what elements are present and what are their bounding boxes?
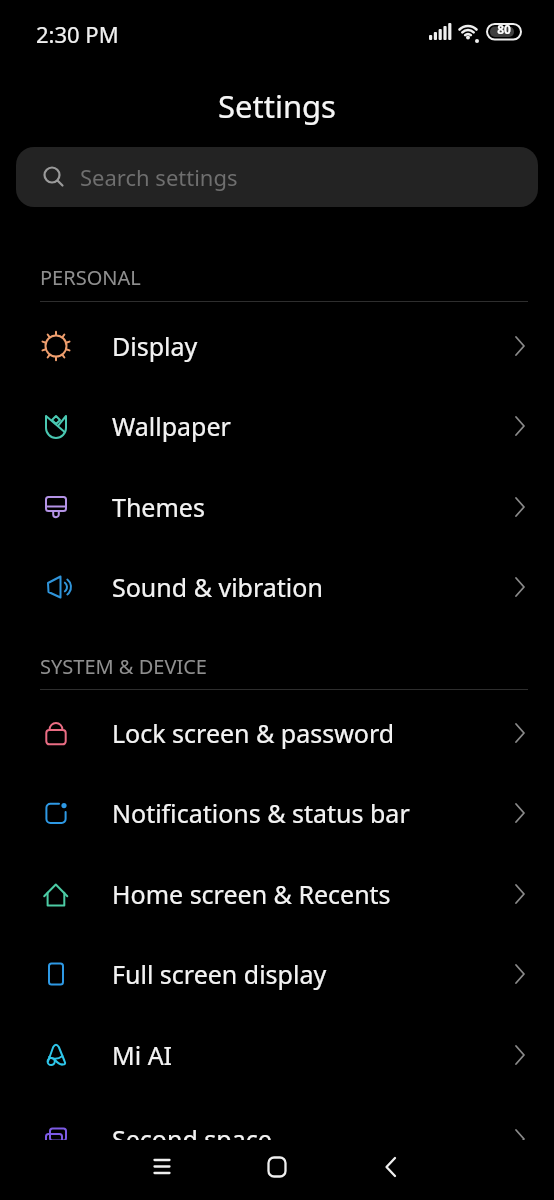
button[interactable] [347,1142,435,1192]
staticText: 80 [493,21,515,37]
staticText: Themes [112,490,205,524]
staticText: Settings [218,85,336,127]
staticText: Second space [112,1122,272,1156]
button[interactable]: Themes [0,467,554,547]
button[interactable]: Lock screen & password [0,693,554,773]
staticText: PERSONAL [40,264,141,291]
button[interactable]: Search settings [16,147,538,207]
staticText: Wallpaper [112,409,231,443]
button[interactable]: Notifications & status bar [0,773,554,853]
staticText: Sound & vibration [112,570,323,604]
button[interactable]: Wallpaper [0,386,554,466]
staticText: Mi AI [112,1038,173,1072]
button[interactable] [118,1142,206,1192]
button[interactable] [233,1142,321,1192]
staticText: Lock screen & password [112,716,395,750]
staticText: Full screen display [112,957,327,991]
staticText: Home screen & Recents [112,877,391,911]
button[interactable]: Display [0,306,554,386]
staticText: SYSTEM & DEVICE [40,653,207,680]
staticText: Display [112,329,198,363]
button[interactable]: Mi AI [0,1015,554,1095]
button[interactable]: Second space [0,1099,554,1179]
button[interactable]: Full screen display [0,934,554,1014]
button[interactable]: Home screen & Recents [0,854,554,934]
staticText: Search settings [80,162,238,192]
staticText: 2:30 PM [36,19,119,49]
button[interactable]: Sound & vibration [0,547,554,627]
staticText: Notifications & status bar [112,796,410,830]
